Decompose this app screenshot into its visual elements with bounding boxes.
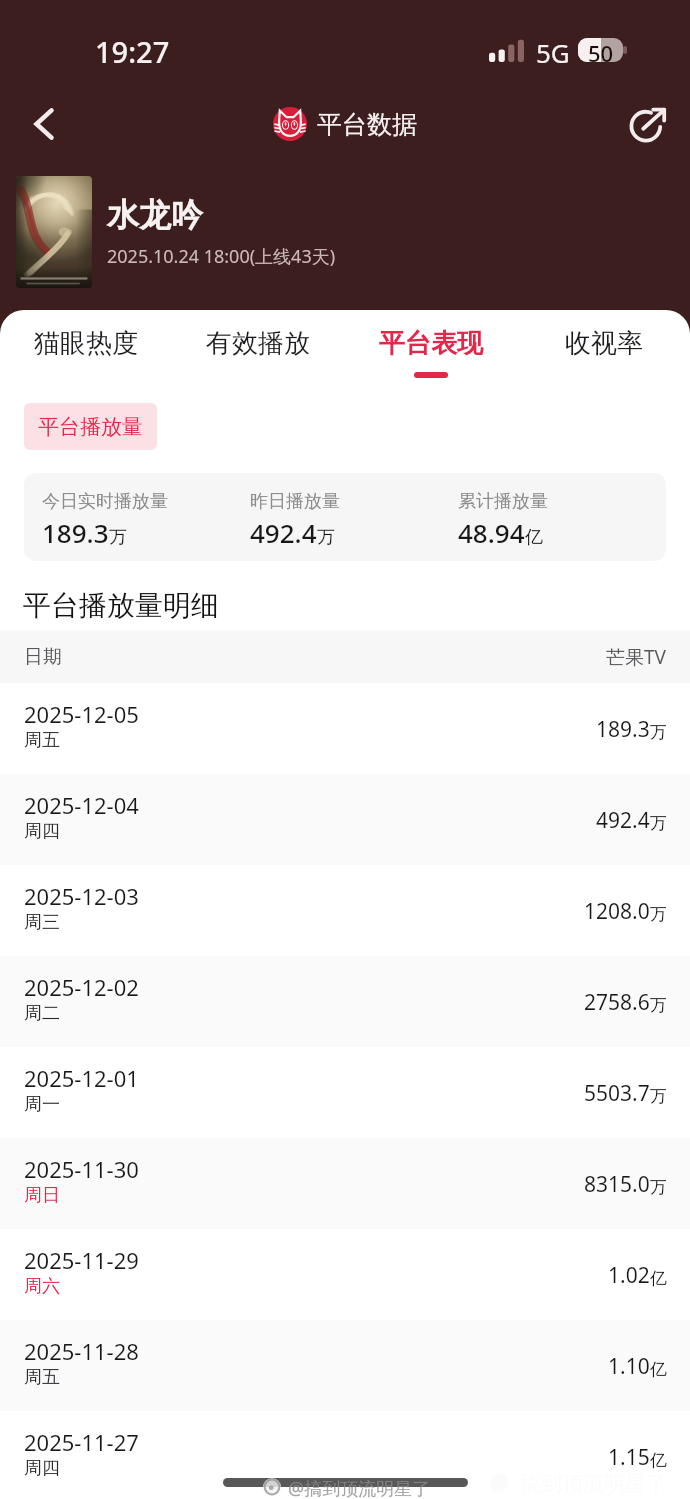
staticText: 平台播放量	[38, 414, 143, 440]
staticText: 万	[650, 813, 667, 834]
staticText: 周五	[24, 729, 60, 752]
staticText: 周三	[24, 911, 60, 934]
staticText: 19:27	[95, 32, 170, 71]
staticText: 万	[317, 526, 335, 549]
staticText: 万	[650, 1086, 667, 1107]
staticText: 1.10	[608, 1352, 650, 1381]
button[interactable]: 2025-12-04	[0, 774, 690, 865]
staticText: 周四	[24, 820, 60, 843]
staticText: 8315.0	[584, 1170, 650, 1199]
button[interactable]: 2025-12-05	[0, 683, 690, 774]
staticText: 平台数据	[317, 109, 417, 140]
staticText: 周五	[24, 1366, 60, 1389]
staticText: 2025-12-01	[24, 1063, 139, 1093]
button[interactable]: 有效播放	[172, 310, 344, 386]
button[interactable]: Back	[20, 100, 68, 148]
staticText: 1208.0	[584, 897, 650, 926]
staticText: 2025-11-28	[24, 1336, 139, 1366]
staticText: 日期	[24, 645, 62, 669]
staticText: 2025-11-27	[24, 1427, 139, 1457]
button[interactable]: 2025-12-02	[0, 956, 690, 1047]
staticText: 万	[650, 722, 667, 743]
staticText: 1.15	[608, 1443, 650, 1472]
staticText: 累计播放量	[458, 490, 548, 513]
staticText: 2758.6	[584, 988, 650, 1017]
staticText: 有效播放	[206, 327, 310, 360]
button[interactable]: 2025-11-30	[0, 1138, 690, 1229]
staticText: 万	[650, 995, 667, 1016]
staticText: 周四	[24, 1457, 60, 1480]
button[interactable]: 平台播放量	[24, 403, 157, 450]
staticText: @搞到顶流明星了	[288, 1476, 431, 1499]
staticText: 492.4	[596, 806, 650, 835]
button[interactable]: 2025-12-03	[0, 865, 690, 956]
staticText: 今日实时播放量	[42, 490, 168, 513]
staticText: 2025.10.24 18:00(上线43天)	[107, 244, 336, 269]
staticText: 189.3	[596, 715, 650, 744]
staticText: 平台播放量明细	[23, 588, 219, 623]
staticText: 万	[109, 526, 127, 549]
button[interactable]: Share	[624, 100, 672, 148]
staticText: 189.3	[42, 515, 109, 550]
staticText: 万	[650, 1177, 667, 1198]
staticText: 亿	[525, 526, 543, 549]
button[interactable]: 猫眼热度	[0, 310, 172, 386]
staticText: 2025-12-02	[24, 972, 139, 1002]
staticText: 1.02	[608, 1261, 650, 1290]
staticText: 亿	[650, 1268, 667, 1289]
staticText: 平台表现	[379, 327, 483, 360]
button[interactable]: 2025-11-29	[0, 1229, 690, 1320]
button[interactable]: 平台表现	[344, 310, 517, 386]
staticText: 2025-12-03	[24, 881, 139, 911]
staticText: 周二	[24, 1002, 60, 1025]
staticText: 万	[650, 904, 667, 925]
staticText: 492.4	[250, 515, 317, 550]
staticText: 周一	[24, 1093, 60, 1116]
staticText: 水龙吟	[107, 195, 203, 235]
button[interactable]: 2025-11-27	[0, 1411, 690, 1499]
staticText: 亿	[650, 1450, 667, 1471]
staticText: 48.94	[458, 515, 525, 550]
staticText: 50	[588, 38, 614, 62]
staticText: 周日	[24, 1184, 60, 1207]
button[interactable]: 收视率	[517, 310, 690, 386]
staticText: 5503.7	[584, 1079, 650, 1108]
staticText: 2025-11-29	[24, 1245, 139, 1275]
staticText: 芒果TV	[606, 644, 666, 670]
staticText: 亿	[650, 1359, 667, 1380]
staticText: 收视率	[565, 327, 643, 360]
staticText: 昨日播放量	[250, 490, 340, 513]
staticText: 5G	[536, 35, 570, 70]
staticText: 2025-11-30	[24, 1154, 139, 1184]
staticText: 猫眼热度	[34, 327, 138, 360]
staticText: 2025-12-05	[24, 699, 139, 729]
staticText: 周六	[24, 1275, 60, 1298]
button[interactable]: 2025-12-01	[0, 1047, 690, 1138]
button[interactable]: 2025-11-28	[0, 1320, 690, 1411]
staticText: 2025-12-04	[24, 790, 139, 820]
